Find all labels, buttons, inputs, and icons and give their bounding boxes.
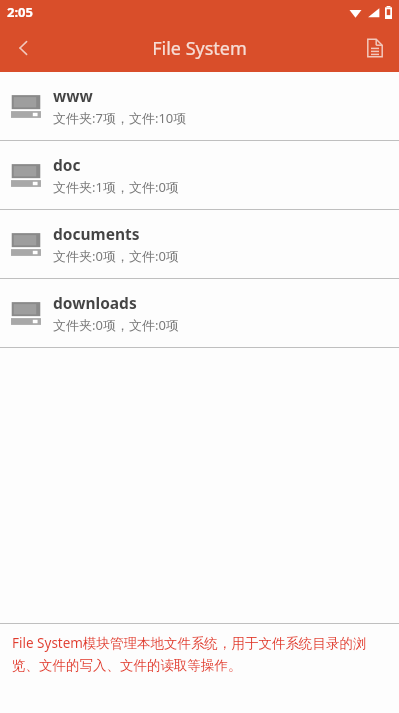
staticText: 文件夹:1项，文件:0项 — [53, 178, 179, 196]
staticText: 文件夹:0项，文件:0项 — [53, 316, 179, 334]
button[interactable]: Back — [0, 24, 48, 72]
staticText: downloads — [53, 292, 137, 313]
button[interactable]: doc — [0, 141, 399, 209]
staticText: File System — [152, 36, 247, 61]
staticText: doc — [53, 154, 81, 175]
button[interactable]: New file — [351, 24, 399, 72]
button[interactable]: documents — [0, 210, 399, 278]
button[interactable]: www — [0, 72, 399, 140]
staticText: 文件夹:0项，文件:0项 — [53, 247, 179, 265]
button[interactable]: downloads — [0, 279, 399, 347]
staticText: www — [53, 85, 93, 106]
staticText: documents — [53, 223, 140, 244]
staticText: 2:05 — [7, 3, 33, 21]
staticText: 文件夹:7项，文件:10项 — [53, 109, 187, 127]
staticText: File System模块管理本地文件系统，用于文件系统目录的浏览、文件的写入、… — [12, 634, 385, 674]
